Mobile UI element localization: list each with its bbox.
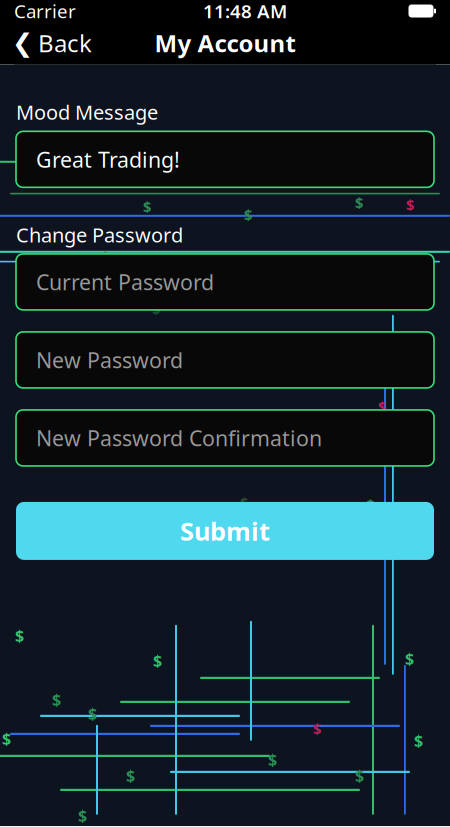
staticText: $ [378,397,386,416]
staticText: New Password Confirmation [36,424,322,452]
staticText: $ [78,805,87,826]
button[interactable]: New Password Confirmation [16,410,434,466]
staticText: $ [88,703,97,724]
staticText: $ [127,421,135,440]
staticText: $ [2,728,11,749]
staticText: $ [355,765,364,786]
staticText: New Password [36,346,183,374]
staticText: $ [240,493,248,512]
staticText: $ [355,193,363,212]
staticText: $ [15,625,24,646]
staticText: $ [52,689,61,710]
staticText: $ [152,299,160,318]
staticText: $ [75,443,83,462]
button[interactable]: Great Trading! [16,131,434,187]
staticText: My Account [154,27,295,59]
staticText: $ [163,131,171,150]
staticText: Current Password [36,268,214,296]
staticText: $ [153,650,162,671]
staticText: Mood Message [16,99,158,125]
button[interactable]: ❮ [0,22,104,64]
staticText: $ [366,495,374,514]
button[interactable]: Current Password [16,254,434,310]
staticText: $ [405,648,414,669]
staticText: $ [101,247,109,266]
staticText: $ [81,151,89,170]
staticText: $ [126,765,135,786]
button[interactable]: New Password [16,332,434,388]
staticText: $ [414,730,423,751]
staticText: $ [406,195,414,214]
staticText: $ [143,197,151,216]
staticText: 11:48 AM [203,0,287,23]
staticText: $ [268,749,277,770]
staticText: $ [88,347,96,366]
button[interactable]: Submit [16,502,434,560]
staticText: Great Trading! [36,145,180,173]
staticText: $ [244,205,252,224]
staticText: Submit [180,514,270,548]
staticText: ❮ [12,29,33,57]
staticText: Back [38,27,92,59]
staticText: Carrier [14,0,76,23]
staticText: Change Password [16,221,183,248]
staticText: $ [313,719,321,738]
